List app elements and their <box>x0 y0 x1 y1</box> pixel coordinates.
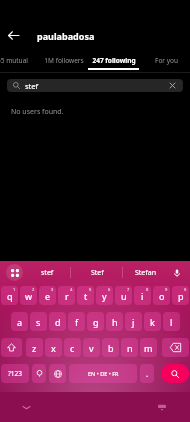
staticText: o <box>159 290 165 302</box>
button[interactable]: l <box>163 312 180 331</box>
button[interactable]: . <box>140 364 154 383</box>
button[interactable]: m <box>140 338 157 357</box>
staticText: m <box>144 342 153 354</box>
staticText: No users found. <box>11 107 64 117</box>
button[interactable]: r <box>58 286 75 305</box>
staticText: stef <box>41 268 54 278</box>
staticText: z <box>32 342 37 354</box>
staticText: 5 <box>89 287 92 292</box>
button[interactable]: h <box>106 312 123 331</box>
button[interactable]: v <box>83 338 100 357</box>
staticText: f <box>75 316 79 328</box>
staticText: 0 <box>184 287 187 292</box>
staticText: Stef <box>91 268 104 278</box>
button[interactable]: y <box>96 286 113 305</box>
staticText: q <box>7 290 13 302</box>
button[interactable]: 1M followers <box>38 48 90 72</box>
button[interactable]: z <box>26 338 43 357</box>
button[interactable]: w <box>20 286 37 305</box>
staticText: 247 following <box>92 56 136 65</box>
button[interactable]: Back <box>5 27 22 44</box>
staticText: 2 <box>32 287 35 292</box>
button[interactable]: Emoji <box>32 364 46 383</box>
button[interactable]: n <box>121 338 138 357</box>
button[interactable]: Search <box>161 364 189 383</box>
staticText: i <box>141 290 144 302</box>
button[interactable]: p <box>172 286 189 305</box>
button[interactable]: Back <box>18 399 34 415</box>
button[interactable]: t <box>77 286 94 305</box>
button[interactable]: Change language <box>49 364 66 383</box>
button[interactable]: i <box>134 286 151 305</box>
button[interactable]: a <box>11 312 28 331</box>
button[interactable]: k <box>144 312 161 331</box>
staticText: paulabadosa <box>37 30 95 42</box>
staticText: EN • DE • FR <box>88 370 119 377</box>
staticText: 1M followers <box>44 56 84 65</box>
staticText: 3 <box>51 287 54 292</box>
button[interactable]: s <box>30 312 47 331</box>
staticText: a <box>17 316 23 328</box>
button[interactable]: Hide keyboard <box>154 399 170 415</box>
staticText: b <box>108 342 114 354</box>
staticText: 65 mutual <box>0 56 28 65</box>
staticText: 6 <box>108 287 111 292</box>
button[interactable]: q <box>1 286 18 305</box>
button[interactable]: u <box>115 286 132 305</box>
staticText: 9 <box>165 287 168 292</box>
staticText: 1 <box>13 287 16 292</box>
staticText: p <box>178 290 184 302</box>
button[interactable]: Stef <box>72 261 122 285</box>
staticText: k <box>150 316 155 328</box>
button[interactable]: Clear search <box>168 81 177 90</box>
button[interactable]: Keyboard toolbar <box>6 264 23 281</box>
staticText: e <box>45 290 51 302</box>
button[interactable]: Voice input <box>168 264 185 281</box>
button[interactable]: 65 mutual <box>0 48 38 72</box>
staticText: r <box>65 290 69 302</box>
button[interactable]: x <box>45 338 62 357</box>
staticText: j <box>132 316 135 328</box>
button[interactable]: c <box>64 338 81 357</box>
button[interactable]: EN • DE • FR <box>69 364 137 383</box>
button[interactable]: g <box>87 312 104 331</box>
staticText: Stefan <box>135 268 156 278</box>
staticText: For you <box>155 56 178 65</box>
staticText: w <box>25 290 33 302</box>
staticText: n <box>127 342 133 354</box>
staticText: s <box>36 316 41 328</box>
staticText: g <box>93 316 99 328</box>
staticText: c <box>70 342 75 354</box>
staticText: l <box>170 316 173 328</box>
button[interactable]: ?123 <box>1 364 29 383</box>
button[interactable]: d <box>49 312 66 331</box>
staticText: t <box>84 290 88 302</box>
button[interactable]: b <box>102 338 119 357</box>
button[interactable]: stef <box>24 261 70 285</box>
button[interactable]: j <box>125 312 142 331</box>
staticText: 4 <box>70 287 73 292</box>
staticText: stef <box>25 81 39 91</box>
button[interactable]: o <box>153 286 170 305</box>
staticText: 7 <box>127 287 130 292</box>
staticText: x <box>51 342 56 354</box>
staticText: u <box>121 290 127 302</box>
staticText: ?123 <box>8 369 22 378</box>
button[interactable]: Backspace <box>162 338 189 357</box>
staticText: . <box>146 368 149 379</box>
button[interactable]: 247 following <box>88 48 139 72</box>
staticText: 8 <box>146 287 149 292</box>
button[interactable]: Stefan <box>124 261 166 285</box>
button[interactable]: For you <box>141 48 190 72</box>
staticText: d <box>55 316 61 328</box>
staticText: v <box>89 342 94 354</box>
button[interactable]: stef <box>7 79 183 92</box>
button[interactable]: e <box>39 286 56 305</box>
button[interactable]: f <box>68 312 85 331</box>
button[interactable]: Shift <box>1 338 22 357</box>
staticText: y <box>102 290 107 302</box>
staticText: h <box>112 316 118 328</box>
